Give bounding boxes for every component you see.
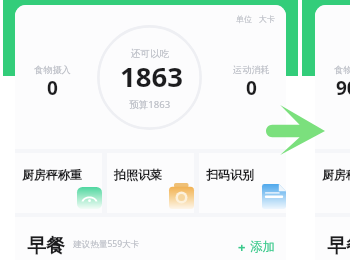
staticText: 大卡	[259, 14, 275, 24]
staticText: 拍照识菜	[114, 167, 162, 182]
staticText: 1863	[120, 58, 183, 95]
button[interactable]: 拍照识菜	[107, 153, 194, 213]
staticText: 食物摄入	[34, 64, 71, 76]
staticText: 厨房秤称重	[22, 167, 82, 182]
staticText: 扫码识别	[206, 167, 254, 182]
button[interactable]: 早餐	[315, 217, 350, 260]
staticText: 运动消耗	[233, 64, 270, 76]
staticText: 904	[336, 75, 350, 101]
staticText: 添加	[250, 239, 275, 255]
staticText: 0	[47, 75, 58, 101]
button[interactable]: 厨房秤称重	[15, 153, 102, 213]
other: Photo food recognition	[169, 183, 194, 209]
staticText: 0	[246, 75, 257, 101]
staticText: 建议热量559大卡	[73, 238, 140, 250]
button[interactable]: 早餐	[15, 217, 286, 260]
staticText: 早餐	[327, 234, 350, 258]
staticText: 早餐	[27, 234, 65, 258]
staticText: 厨房秤称重	[322, 167, 350, 182]
staticText: +	[238, 238, 246, 256]
staticText: 单位	[236, 14, 252, 24]
button[interactable]: 厨房秤称重	[315, 153, 350, 213]
staticText: 食物摄入	[334, 64, 350, 76]
button[interactable]: 扫码识别	[199, 153, 286, 213]
staticText: 预算1863	[129, 98, 171, 111]
button[interactable]: +	[238, 238, 275, 256]
other: Kitchen scale	[77, 187, 102, 209]
staticText: 还可以吃	[131, 48, 170, 60]
other: Scan barcode	[262, 184, 286, 209]
